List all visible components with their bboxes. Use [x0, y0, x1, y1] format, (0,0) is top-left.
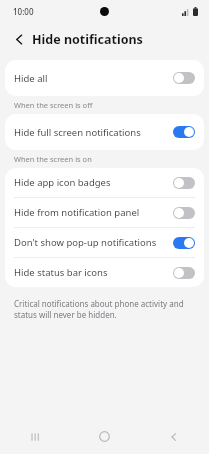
staticText: Hide status bar icons [14, 266, 173, 279]
button[interactable]: Don't show pop-up notifications [5, 228, 204, 257]
button[interactable]: Hide status bar icons [5, 258, 204, 287]
staticText: When the screen is off [14, 100, 93, 110]
button[interactable]: Hide from notification panel [5, 198, 204, 227]
button[interactable]: Hide all [5, 60, 204, 96]
staticText: Hide from notification panel [14, 206, 173, 219]
button[interactable]: Back [9, 29, 30, 50]
staticText: Hide all [14, 72, 173, 85]
staticText: Don't show pop-up notifications [14, 236, 173, 249]
button[interactable]: Hide full screen notifications [5, 114, 204, 150]
staticText: Hide full screen notifications [14, 126, 173, 139]
staticText: Hide notifications [32, 31, 143, 48]
button[interactable]: Hide app icon badges [5, 168, 204, 197]
button[interactable]: Home [69, 419, 139, 454]
staticText: When the screen is on [14, 154, 92, 164]
button[interactable]: Back [139, 419, 209, 454]
staticText: Hide app icon badges [14, 176, 173, 189]
staticText: Critical notifications about phone activ… [14, 298, 195, 321]
staticText: 10:00 [13, 6, 34, 17]
button[interactable]: Recent apps [0, 419, 69, 454]
